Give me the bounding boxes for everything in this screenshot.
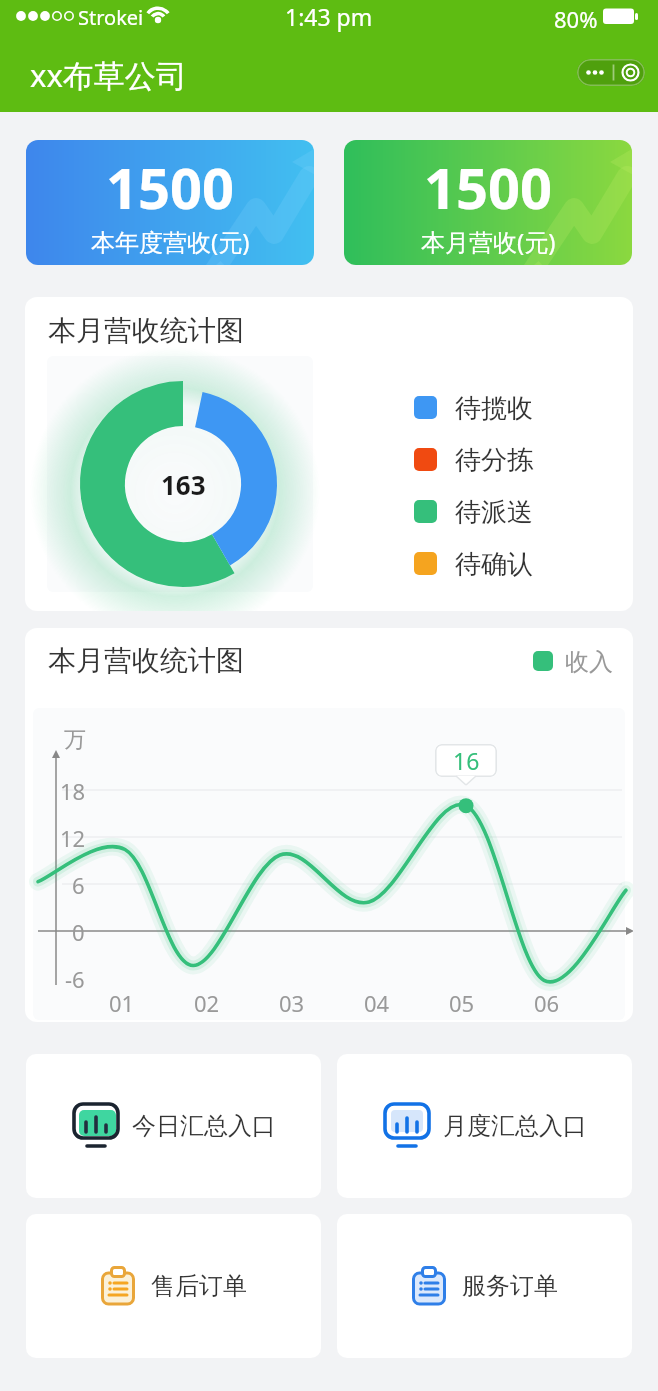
- staticText: 04: [364, 988, 390, 1016]
- staticText: 待揽收: [455, 392, 533, 425]
- staticText: 本月营收统计图: [48, 643, 244, 678]
- staticText: 01: [109, 988, 135, 1016]
- button[interactable]: 月度汇总入口: [337, 1054, 632, 1198]
- staticText: 本月营收(元): [421, 225, 556, 258]
- staticText: 03: [279, 988, 305, 1016]
- staticText: 6: [72, 870, 85, 898]
- staticText: xx布草公司: [30, 54, 187, 96]
- staticText: 万: [64, 726, 86, 754]
- staticText: 12: [60, 823, 86, 851]
- staticText: 收入: [565, 647, 613, 677]
- staticText: 今日汇总入口: [132, 1111, 276, 1141]
- staticText: 本年度营收(元): [91, 225, 250, 258]
- staticText: 1500: [106, 149, 235, 225]
- staticText: 服务订单: [462, 1271, 558, 1301]
- staticText: 待确认: [455, 548, 533, 581]
- button[interactable]: 1500: [26, 140, 314, 265]
- staticText: 80%: [554, 4, 598, 34]
- button[interactable]: [577, 59, 645, 86]
- staticText: 163: [161, 467, 206, 502]
- staticText: 售后订单: [151, 1271, 247, 1301]
- staticText: 02: [194, 988, 220, 1016]
- staticText: -6: [65, 964, 85, 992]
- button[interactable]: 售后订单: [26, 1214, 321, 1358]
- staticText: 本月营收统计图: [48, 313, 244, 348]
- staticText: 06: [534, 988, 560, 1016]
- staticText: 待分拣: [455, 444, 533, 477]
- staticText: 1:43 pm: [285, 1, 373, 32]
- staticText: 18: [60, 776, 86, 804]
- button[interactable]: 服务订单: [337, 1214, 632, 1358]
- staticText: 16: [453, 745, 480, 776]
- button[interactable]: 今日汇总入口: [26, 1054, 321, 1198]
- staticText: Strokei: [78, 4, 144, 31]
- staticText: 1500: [424, 149, 553, 225]
- staticText: 0: [72, 917, 85, 945]
- button[interactable]: 1500: [344, 140, 632, 265]
- staticText: 待派送: [455, 496, 533, 529]
- staticText: 月度汇总入口: [443, 1111, 587, 1141]
- staticText: 05: [449, 988, 475, 1016]
